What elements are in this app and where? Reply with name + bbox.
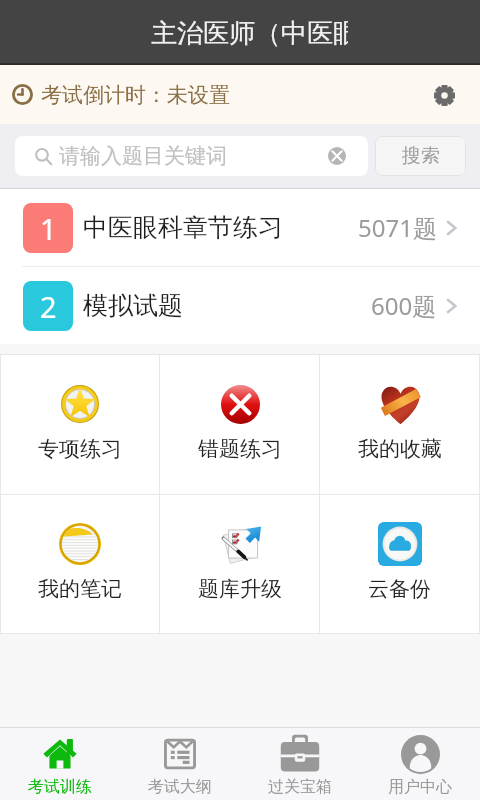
button[interactable]: 2 — [0, 267, 480, 344]
staticText: 考试倒计时：未设置 — [41, 82, 230, 108]
button[interactable]: 我的收藏 — [320, 355, 479, 494]
staticText: 错题练习 — [198, 436, 282, 462]
staticText: 专项练习 — [38, 436, 122, 462]
button[interactable]: 考试大纲 — [120, 728, 240, 800]
button[interactable]: 错题练习 — [160, 355, 319, 494]
staticText: 考试训练 — [28, 777, 92, 797]
staticText: 题库升级 — [198, 576, 282, 602]
button[interactable]: 过关宝箱 — [240, 728, 360, 800]
button[interactable]: 题库升级 — [160, 495, 319, 633]
staticText: 用户中心 — [388, 777, 452, 797]
staticText: 中医眼科章节练习 — [83, 212, 283, 243]
staticText: 2 — [40, 287, 57, 326]
staticText: 考试大纲 — [148, 777, 212, 797]
button[interactable]: 用户中心 — [360, 728, 480, 800]
staticText: 我的笔记 — [38, 576, 122, 602]
button[interactable]: 我的笔记 — [1, 495, 159, 633]
button[interactable]: Settings — [421, 72, 467, 118]
staticText: 搜索 — [402, 144, 440, 168]
staticText: 1 — [40, 209, 57, 248]
button[interactable]: 1 — [0, 189, 480, 266]
staticText: 请输入题目关键词 — [59, 143, 227, 169]
button[interactable]: 考试训练 — [0, 728, 120, 800]
staticText: 模拟试题 — [83, 290, 183, 321]
staticText: 过关宝箱 — [268, 777, 332, 797]
staticText: 云备份 — [368, 576, 431, 602]
staticText: 5071题 — [358, 211, 437, 244]
staticText: 主治医师（中医眼科学） — [151, 17, 348, 50]
button[interactable]: 云备份 — [320, 495, 479, 633]
staticText: 600题 — [371, 289, 437, 322]
button[interactable]: 请输入题目关键词 — [15, 136, 368, 176]
button[interactable]: 专项练习 — [1, 355, 159, 494]
staticText: 我的收藏 — [358, 436, 442, 462]
button[interactable]: 搜索 — [375, 136, 466, 176]
button[interactable]: Clear text — [325, 144, 349, 168]
